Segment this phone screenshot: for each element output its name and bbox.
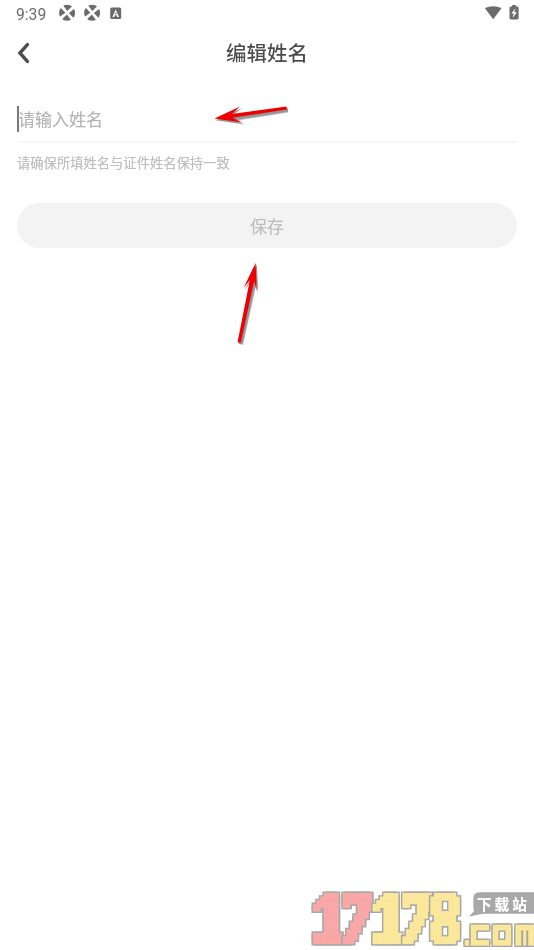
staticText: 编辑姓名 bbox=[226, 37, 308, 67]
staticText: 下载站 bbox=[477, 893, 530, 914]
staticText: 请确保所填姓名与证件姓名保持一致 bbox=[17, 153, 230, 172]
staticText: 9:39 bbox=[16, 5, 47, 23]
staticText: 请输入姓名 bbox=[18, 106, 103, 131]
button[interactable]: 请输入姓名 bbox=[0, 96, 534, 142]
staticText: 保存 bbox=[250, 213, 284, 238]
button[interactable]: 保存 bbox=[17, 203, 517, 248]
button[interactable]: Back bbox=[2, 31, 45, 74]
